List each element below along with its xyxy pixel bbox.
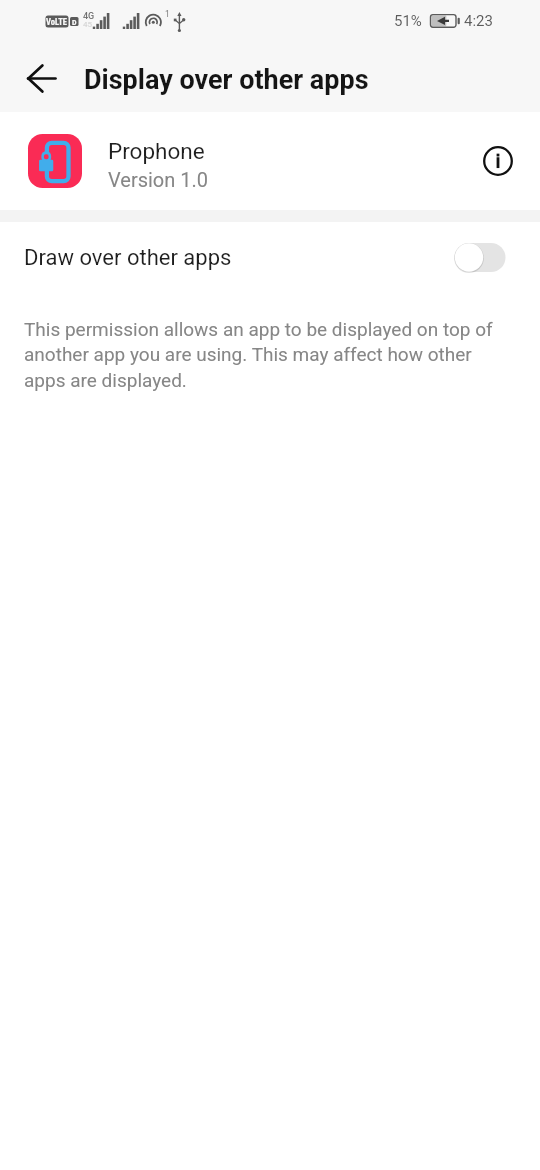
staticText: Version 1.0 — [108, 168, 209, 191]
staticText: 4:23 — [464, 12, 493, 30]
staticText: D — [72, 18, 77, 27]
button[interactable]: Draw over other apps — [454, 242, 506, 273]
button[interactable]: App info — [474, 137, 522, 185]
staticText: 51% — [394, 12, 422, 30]
staticText: Display over other apps — [84, 64, 369, 96]
button[interactable]: Draw over other apps — [0, 222, 540, 294]
staticText: VoLTE — [46, 17, 67, 27]
staticText: Prophone — [108, 138, 205, 164]
button[interactable]: Back — [6, 51, 62, 107]
staticText: Draw over other apps — [24, 245, 232, 271]
staticText: 45 — [83, 20, 92, 29]
staticText: 1 — [165, 9, 170, 19]
staticText: This permission allows an app to be disp… — [24, 318, 516, 392]
staticText: 4G — [83, 11, 95, 22]
button[interactable]: Prophone — [0, 112, 540, 210]
